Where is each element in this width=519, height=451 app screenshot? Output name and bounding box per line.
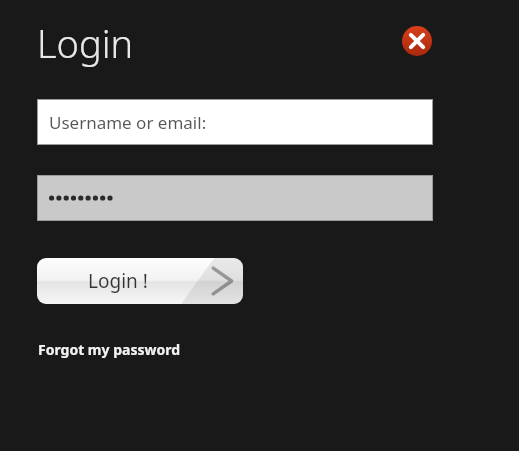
- staticText: Forgot my password: [38, 340, 181, 359]
- button[interactable]: Username or email:: [38, 100, 432, 144]
- button[interactable]: Forgot my password: [37, 338, 182, 361]
- button[interactable]: Login !: [37, 258, 243, 304]
- staticText: Login: [37, 17, 134, 69]
- button[interactable]: [38, 176, 432, 220]
- staticText: Username or email:: [49, 111, 207, 134]
- button[interactable]: Close: [402, 26, 432, 56]
- staticText: Login !: [88, 268, 148, 294]
